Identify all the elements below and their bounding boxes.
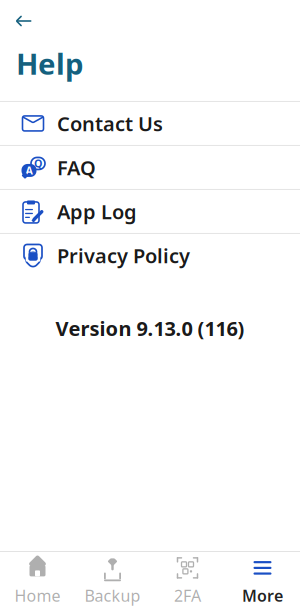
button[interactable]: Contact Us — [0, 102, 300, 145]
button[interactable]: Backup — [75, 552, 150, 610]
staticText: Contact Us — [57, 110, 163, 137]
staticText: Home — [14, 585, 60, 606]
button[interactable]: Home — [0, 552, 75, 610]
staticText: FAQ — [57, 154, 96, 181]
staticText: More — [242, 585, 283, 606]
staticText: A — [25, 163, 32, 178]
button[interactable]: Privacy Policy — [0, 234, 300, 277]
staticText: Backup — [84, 585, 140, 606]
staticText: Help — [16, 44, 84, 83]
staticText: Q — [34, 156, 42, 171]
staticText: Privacy Policy — [57, 242, 190, 269]
button[interactable]: Q — [0, 146, 300, 189]
button[interactable]: 2FA — [150, 552, 225, 610]
button[interactable]: More — [225, 552, 300, 610]
button[interactable]: Back — [2, 4, 46, 38]
staticText: 2FA — [174, 585, 201, 606]
staticText: App Log — [57, 198, 137, 225]
staticText: Version 9.13.0 (116) — [55, 315, 244, 342]
button[interactable]: App Log — [0, 190, 300, 233]
